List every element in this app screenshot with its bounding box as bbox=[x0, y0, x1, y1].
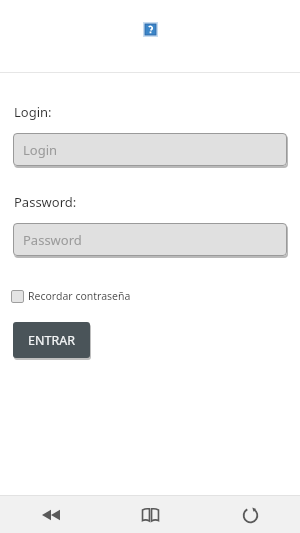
staticText: Recordar contraseña bbox=[28, 289, 131, 303]
button[interactable]: Login bbox=[13, 133, 287, 166]
staticText: Password: bbox=[14, 193, 77, 211]
staticText: Password bbox=[23, 231, 82, 249]
staticText: Login: bbox=[14, 103, 52, 121]
button[interactable]: Reload bbox=[200, 496, 300, 533]
button[interactable]: ENTRAR bbox=[13, 322, 90, 358]
staticText: ENTRAR bbox=[28, 332, 75, 349]
button[interactable]: Recordar contraseña bbox=[11, 289, 131, 303]
button[interactable]: Back bbox=[0, 496, 100, 533]
staticText: Login bbox=[23, 141, 58, 159]
button[interactable]: Bookmarks bbox=[100, 496, 200, 533]
button[interactable]: Password bbox=[13, 223, 287, 256]
